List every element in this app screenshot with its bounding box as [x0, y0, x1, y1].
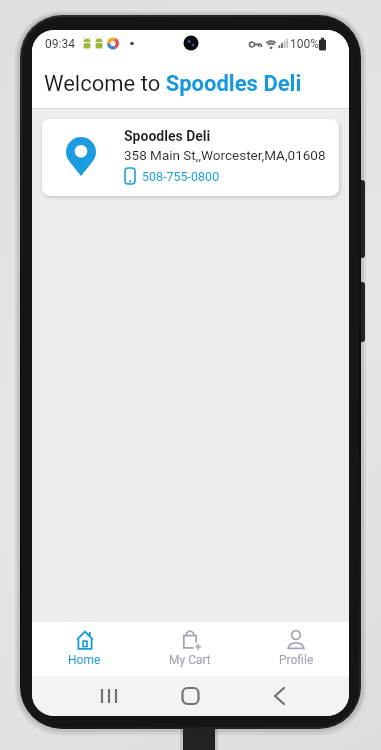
- staticText: 508-755-0800: [142, 169, 220, 184]
- staticText: My Cart: [169, 653, 211, 667]
- staticText: 358 Main St,,Worcester,MA,01608: [124, 147, 326, 163]
- button[interactable]: Spoodles Deli: [42, 119, 339, 196]
- staticText: 100%: [290, 37, 320, 51]
- staticText: Spoodles Deli: [124, 128, 211, 144]
- button[interactable]: Home: [32, 622, 137, 676]
- button[interactable]: Profile: [243, 622, 349, 676]
- button[interactable]: My Cart: [137, 622, 243, 676]
- staticText: Home: [68, 653, 101, 667]
- staticText: 09:34: [45, 37, 75, 51]
- staticText: Welcome to Spoodles Deli: [44, 71, 302, 97]
- staticText: Profile: [279, 653, 314, 667]
- button[interactable]: 508-755-0800: [124, 167, 220, 185]
